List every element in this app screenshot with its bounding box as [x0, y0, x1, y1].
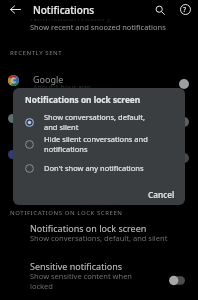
button[interactable]: Toggle notifications	[179, 117, 189, 127]
button[interactable]: Back	[4, 0, 26, 19]
staticText: Notifications	[33, 3, 95, 17]
staticText: NOTIFICATIONS ON LOCK SCREEN	[10, 209, 123, 217]
button[interactable]: Toggle notifications	[179, 79, 189, 89]
button[interactable]: Cancel	[142, 187, 181, 202]
staticText: About 1 hour ago	[33, 83, 91, 93]
button[interactable]: Toggle notifications	[179, 153, 189, 163]
staticText: ?	[183, 5, 187, 15]
staticText: Show conversations, default, and silent	[30, 233, 168, 243]
button[interactable]: Help	[175, 0, 195, 19]
button[interactable]: Notification history	[0, 0, 198, 34]
staticText: Hide silent conversations and notificati…	[44, 134, 148, 154]
button[interactable]: Search	[150, 0, 170, 19]
button[interactable]: Hide silent conversations and notificati…	[13, 132, 185, 156]
staticText: Don't show any notifications	[44, 163, 144, 173]
staticText: Notifications on lock screen	[30, 222, 147, 234]
button[interactable]: Show conversations, default, and silent	[13, 110, 185, 134]
button[interactable]: Notifications on lock screen	[0, 219, 198, 249]
staticText: Show recent and snoozed notifications	[30, 22, 166, 32]
button[interactable]: Toggle notifications	[0, 102, 198, 138]
button[interactable]: Sensitive notifications	[0, 257, 198, 295]
staticText: Notifications on lock screen	[25, 94, 141, 105]
button[interactable]: Google	[0, 64, 198, 100]
staticText: Cancel	[148, 189, 175, 200]
staticText: Show sensitive content when locked	[30, 271, 132, 291]
staticText: Sensitive notifications	[30, 260, 123, 272]
button[interactable]: Sensitive notifications toggle	[169, 275, 185, 286]
staticText: Show conversations, default, and silent	[44, 112, 145, 132]
staticText: RECENTLY SENT	[10, 49, 63, 57]
staticText: Google	[33, 73, 64, 85]
staticText: Notification history	[30, 11, 111, 23]
button[interactable]: Toggle notifications	[0, 138, 198, 174]
button[interactable]: Don't show any notifications	[13, 156, 185, 180]
